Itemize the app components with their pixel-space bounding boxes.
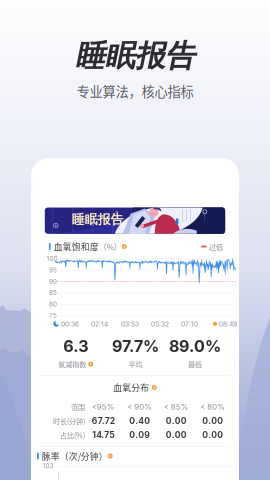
staticText: 02:14 (91, 320, 108, 328)
staticText: 80 (49, 300, 57, 308)
staticText: 氧减指数 (58, 359, 86, 369)
staticText: 0.00 (166, 430, 187, 440)
staticText: 睡眠报告 (75, 37, 195, 75)
staticText: 07:10 (181, 320, 198, 328)
staticText: （%） (99, 241, 122, 252)
staticText: <95% (92, 402, 115, 412)
staticText: 专业算法，核心指标 (76, 81, 193, 101)
staticText: 67.72 (92, 416, 115, 426)
staticText: 0.00 (202, 430, 223, 440)
staticText: < 90% (127, 402, 152, 412)
staticText: 睡眠报告 (72, 211, 124, 227)
staticText: 时长(分钟) (53, 416, 85, 426)
staticText: 0.40 (129, 416, 150, 426)
staticText: 血氧饱和度 (54, 240, 99, 253)
staticText: 0.00 (202, 416, 223, 426)
staticText: 90 (49, 277, 57, 285)
staticText: 占比(%) (60, 430, 85, 440)
staticText: 过低 (209, 241, 223, 252)
button[interactable]: 6.3 (58, 337, 93, 369)
staticText: 14.75 (92, 430, 114, 440)
staticText: 血氧分布 (113, 381, 149, 394)
staticText: 0.00 (166, 416, 187, 426)
staticText: 00:36 (61, 320, 79, 328)
staticText: 75 (49, 312, 57, 319)
staticText: 08:49 (219, 320, 237, 328)
staticText: < 85% (164, 402, 189, 412)
staticText: 脉率（次/分钟） (42, 450, 108, 462)
button[interactable]: 97.7% (112, 337, 159, 369)
staticText: 最低 (188, 359, 202, 369)
staticText: 05:32 (151, 320, 169, 328)
staticText: 103 (42, 462, 53, 470)
staticText: 97.7% (112, 337, 159, 356)
staticText: < 80% (200, 402, 225, 412)
staticText: 0.09 (129, 430, 150, 440)
staticText: 范围 (71, 402, 85, 412)
staticText: 03:53 (121, 320, 139, 328)
staticText: 100 (46, 255, 57, 262)
staticText: 89.0% (169, 337, 221, 356)
staticText: 6.3 (63, 337, 88, 356)
staticText: 平均 (128, 359, 142, 369)
staticText: 95 (49, 266, 57, 274)
button[interactable]: 89.0% (169, 337, 221, 369)
staticText: 85 (49, 289, 57, 297)
